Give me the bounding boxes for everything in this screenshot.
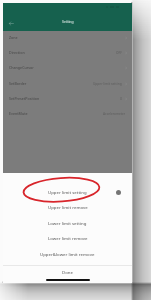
staticText: Lower limit setting bbox=[48, 220, 87, 226]
staticText: Direction bbox=[9, 50, 25, 55]
button[interactable]: Upper limit remove bbox=[3, 199, 132, 214]
staticText: EventMute bbox=[9, 111, 28, 116]
button[interactable]: SetBorder bbox=[3, 76, 132, 91]
staticText: Done bbox=[62, 269, 73, 275]
staticText: Upper&lower limit remove bbox=[40, 251, 95, 257]
staticText: Lower limit remove bbox=[48, 235, 88, 241]
staticText: Setting bbox=[62, 19, 74, 24]
staticText: Upper limit remove bbox=[48, 204, 88, 210]
staticText: Accelerometer bbox=[103, 112, 126, 116]
button[interactable]: ChangeCursor bbox=[3, 60, 132, 75]
staticText: X bbox=[120, 97, 122, 101]
button[interactable]: Done bbox=[3, 266, 132, 278]
button[interactable]: Upper limit setting bbox=[3, 184, 132, 199]
button[interactable]: Zone bbox=[3, 30, 132, 45]
staticText: Upper limit setting bbox=[48, 189, 87, 195]
staticText: SetPresetPosition bbox=[9, 96, 40, 101]
staticText: SetBorder bbox=[9, 81, 27, 86]
staticText: OFF bbox=[116, 51, 122, 55]
button[interactable]: Upper&lower limit remove bbox=[3, 246, 132, 261]
button[interactable]: Lower limit remove bbox=[3, 230, 132, 245]
button[interactable]: EventMute bbox=[3, 106, 132, 121]
button[interactable]: Back bbox=[6, 18, 17, 29]
staticText: ChangeCursor bbox=[9, 65, 34, 70]
staticText: Zone bbox=[9, 35, 18, 40]
staticText: Upper limit setting bbox=[93, 82, 122, 86]
button[interactable]: SetPresetPosition bbox=[3, 91, 132, 106]
button[interactable]: Lower limit setting bbox=[3, 215, 132, 230]
